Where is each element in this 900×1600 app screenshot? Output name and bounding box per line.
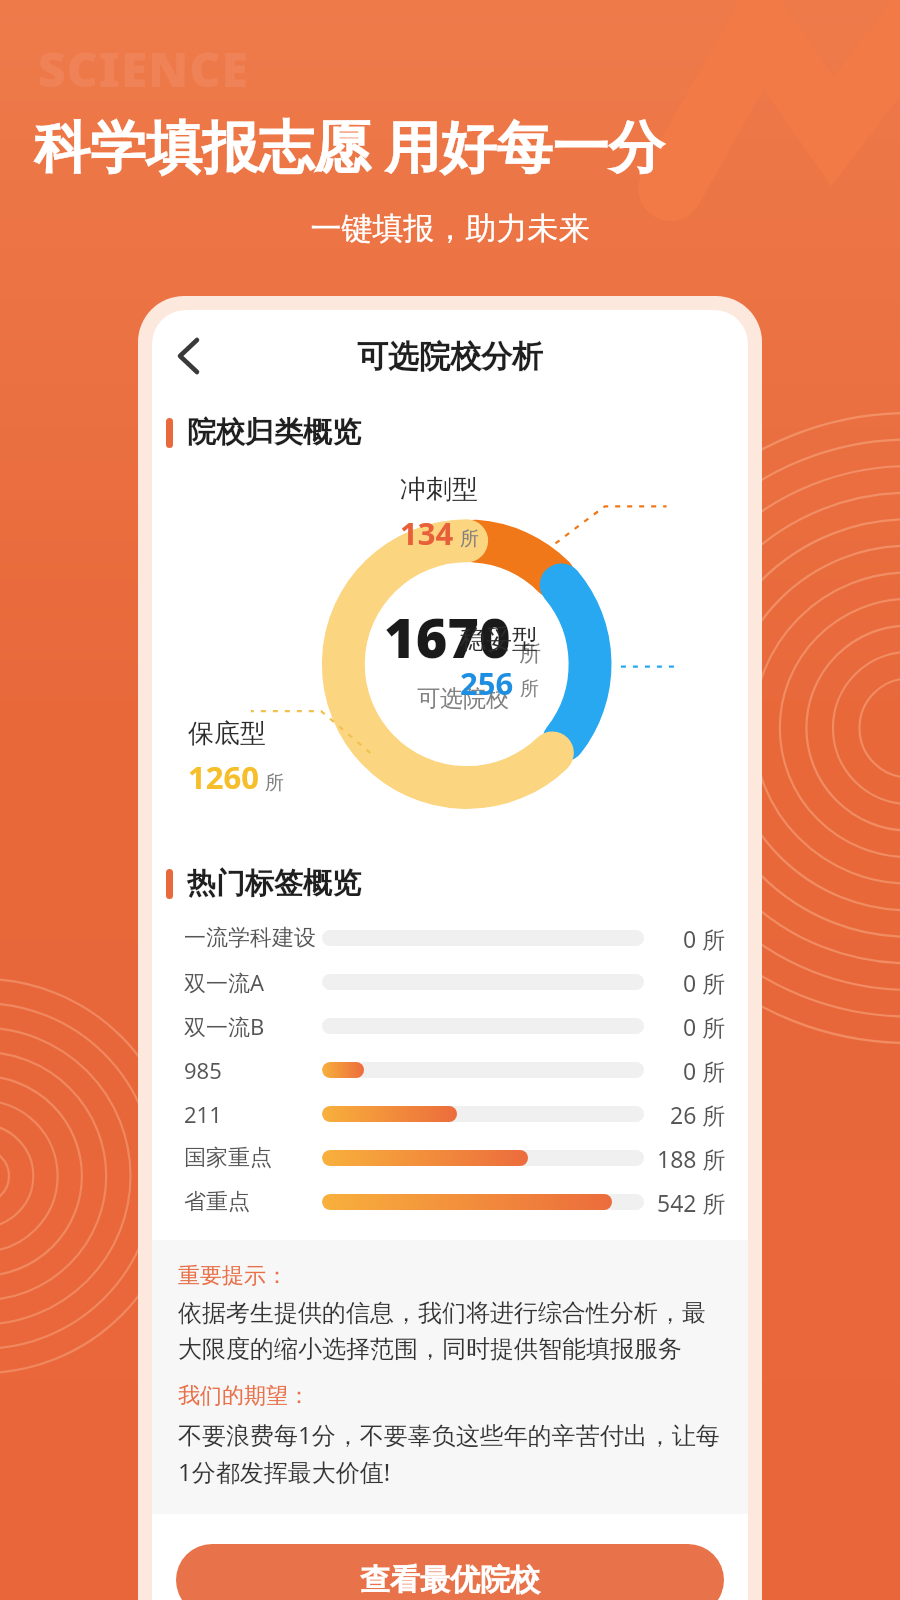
- button[interactable]: 查看最优院校: [176, 1544, 724, 1600]
- staticText: 1260: [188, 756, 259, 798]
- staticText: 所: [520, 677, 539, 701]
- staticText: 211: [184, 1099, 222, 1129]
- staticText: 188 所: [657, 1143, 726, 1174]
- staticText: 985: [184, 1055, 222, 1085]
- staticText: 一流学科建设: [184, 924, 316, 952]
- button[interactable]: 985: [152, 1048, 748, 1092]
- button[interactable]: 一流学科建设: [152, 916, 748, 960]
- staticText: 256: [460, 662, 514, 704]
- button[interactable]: 国家重点: [152, 1136, 748, 1180]
- staticText: 一键填报，助力未来: [0, 209, 900, 248]
- staticText: 保底型: [188, 717, 266, 750]
- button[interactable]: 省重点: [152, 1180, 748, 1224]
- staticText: 0 所: [683, 967, 726, 998]
- staticText: 双一流B: [184, 1011, 265, 1041]
- button[interactable]: Back: [160, 328, 216, 384]
- staticText: 科学填报志愿 用好每一分: [34, 107, 878, 183]
- staticText: 双一流A: [184, 967, 265, 997]
- staticText: 134: [400, 512, 454, 554]
- staticText: 所: [460, 527, 479, 551]
- button[interactable]: 211: [152, 1092, 748, 1136]
- staticText: 可选院校分析: [357, 337, 543, 376]
- staticText: 0 所: [683, 1011, 726, 1042]
- button[interactable]: 双一流A: [152, 960, 748, 1004]
- staticText: 重要提示：: [178, 1262, 288, 1290]
- staticText: 所: [265, 771, 284, 795]
- staticText: 国家重点: [184, 1144, 272, 1172]
- staticText: 我们的期望：: [178, 1382, 310, 1410]
- staticText: 所: [519, 640, 541, 668]
- staticText: 0 所: [683, 1055, 726, 1086]
- staticText: 冲刺型: [400, 473, 478, 506]
- staticText: 26 所: [670, 1099, 726, 1130]
- staticText: SCIENCE: [38, 36, 249, 101]
- staticText: 可选院校: [417, 684, 509, 713]
- staticText: 稳妥型: [460, 623, 538, 656]
- staticText: 依据考生提供的信息，我们将进行综合性分析，最大限度的缩小选择范围，同时提供智能填…: [178, 1298, 726, 1364]
- staticText: 不要浪费每1分，不要辜负这些年的辛苦付出，让每1分都发挥最大价值!: [178, 1418, 726, 1488]
- staticText: 查看最优院校: [360, 1561, 540, 1599]
- staticText: 542 所: [657, 1187, 726, 1218]
- staticText: 省重点: [184, 1188, 250, 1216]
- button[interactable]: 双一流B: [152, 1004, 748, 1048]
- staticText: 0 所: [683, 923, 726, 954]
- staticText: 热门标签概览: [187, 865, 361, 902]
- staticText: 院校归类概览: [187, 414, 361, 451]
- staticText: 1670: [384, 600, 511, 674]
